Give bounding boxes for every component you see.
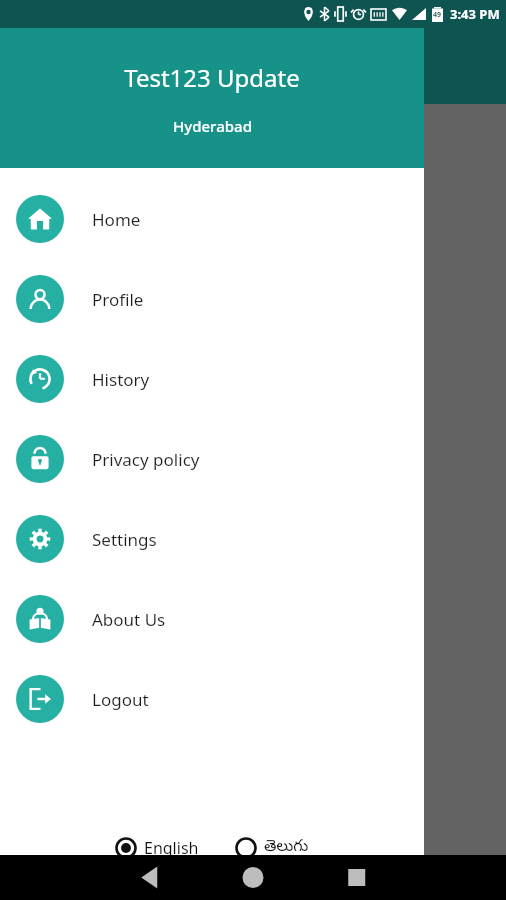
button[interactable]: English <box>111 831 203 865</box>
staticText: English <box>144 837 199 859</box>
staticText: Home <box>92 208 141 231</box>
button[interactable]: Logout <box>0 659 424 739</box>
button[interactable]: Home <box>0 179 424 259</box>
button[interactable]: Settings <box>0 499 424 579</box>
staticText: 3:43 PM <box>450 5 500 23</box>
button[interactable]: About Us <box>0 579 424 659</box>
staticText: Settings <box>92 528 157 551</box>
staticText: తెలుగు <box>264 837 309 859</box>
staticText: Logout <box>92 688 149 711</box>
staticText: Profile <box>92 288 144 311</box>
button[interactable]: Privacy policy <box>0 419 424 499</box>
staticText: Hyderabad <box>173 116 252 136</box>
staticText: Test123 Update <box>124 61 300 94</box>
staticText: About Us <box>92 608 166 631</box>
button[interactable]: History <box>0 339 424 419</box>
staticText: Privacy policy <box>92 448 200 471</box>
button[interactable]: Profile <box>0 259 424 339</box>
staticText: 49 <box>433 10 442 20</box>
button[interactable]: తెలుగు <box>231 831 313 865</box>
staticText: History <box>92 368 150 391</box>
